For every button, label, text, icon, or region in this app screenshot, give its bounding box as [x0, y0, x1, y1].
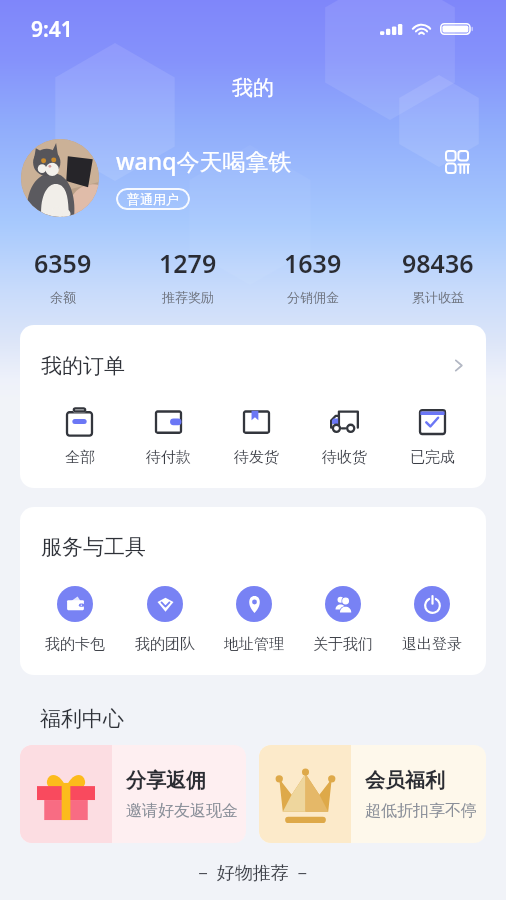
- staticText: 累计收益: [412, 289, 464, 305]
- staticText: 福利中心: [40, 706, 124, 732]
- staticText: 推荐奖励: [162, 289, 214, 305]
- button[interactable]: 1279: [125, 246, 250, 305]
- button[interactable]: 普通用户: [116, 188, 190, 210]
- staticText: wanq今天喝拿铁: [116, 145, 292, 176]
- button[interactable]: 6359: [0, 246, 125, 305]
- staticText: － 好物推荐 －: [194, 860, 312, 885]
- button[interactable]: 98436: [375, 246, 500, 305]
- button[interactable]: 会员福利: [259, 745, 486, 843]
- staticText: 我的: [232, 75, 274, 101]
- button[interactable]: 待付款: [124, 406, 212, 467]
- staticText: 1639: [284, 246, 342, 280]
- staticText: 分享返佣: [126, 768, 206, 793]
- button[interactable]: 退出登录: [387, 586, 476, 654]
- staticText: 我的订单: [41, 353, 125, 379]
- staticText: 1279: [159, 246, 217, 280]
- button[interactable]: 待收货: [300, 406, 388, 467]
- staticText: 已完成: [410, 448, 455, 467]
- staticText: 服务与工具: [41, 534, 146, 560]
- staticText: 我的团队: [135, 635, 195, 654]
- staticText: 关于我们: [313, 635, 373, 654]
- staticText: 待发货: [234, 448, 279, 467]
- staticText: 余额: [50, 289, 76, 305]
- staticText: 地址管理: [224, 635, 284, 654]
- staticText: 98436: [402, 246, 474, 280]
- button[interactable]: 待发货: [212, 406, 300, 467]
- button[interactable]: 已完成: [388, 406, 476, 467]
- button[interactable]: 分享返佣: [20, 745, 246, 843]
- staticText: 会员福利: [365, 768, 445, 793]
- button[interactable]: 我的订单: [20, 325, 486, 406]
- staticText: 全部: [65, 448, 95, 467]
- button[interactable]: Scan QR code: [438, 143, 476, 181]
- staticText: 超低折扣享不停: [365, 801, 477, 821]
- button[interactable]: 我的团队: [120, 586, 209, 654]
- button[interactable]: 我的卡包: [30, 586, 120, 654]
- staticText: 9:41: [31, 15, 73, 44]
- button[interactable]: 地址管理: [209, 586, 298, 654]
- button[interactable]: Profile avatar: [21, 139, 99, 217]
- button[interactable]: 全部: [35, 406, 124, 467]
- staticText: 我的卡包: [45, 635, 105, 654]
- staticText: 普通用户: [127, 191, 179, 207]
- staticText: 6359: [34, 246, 92, 280]
- button[interactable]: 1639: [250, 246, 375, 305]
- staticText: 分销佣金: [287, 289, 339, 305]
- staticText: 待收货: [322, 448, 367, 467]
- staticText: 待付款: [146, 448, 191, 467]
- staticText: 退出登录: [402, 635, 462, 654]
- button[interactable]: 关于我们: [298, 586, 387, 654]
- staticText: 邀请好友返现金: [126, 801, 238, 821]
